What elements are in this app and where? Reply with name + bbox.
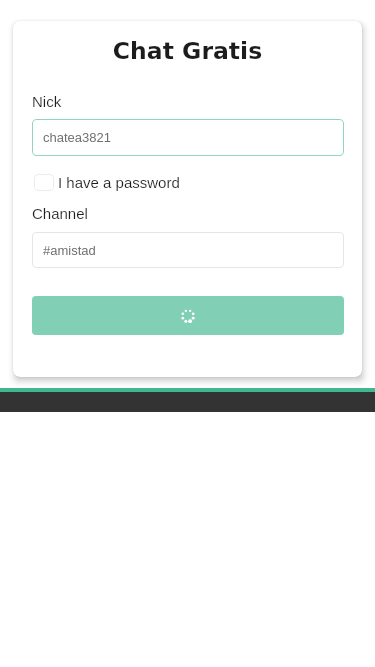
staticText: chatea3821 (43, 130, 111, 145)
button[interactable]: chatea3821 (32, 119, 344, 156)
button[interactable]: #amistad (32, 232, 344, 268)
staticText: #amistad (43, 243, 96, 258)
staticText: Chat Gratis (13, 37, 362, 64)
button[interactable]: Enter chat (32, 296, 344, 335)
button[interactable]: I have a password (34, 172, 180, 193)
staticText: Nick (32, 93, 62, 110)
staticText: Channel (32, 205, 88, 222)
staticText: I have a password (58, 174, 180, 191)
